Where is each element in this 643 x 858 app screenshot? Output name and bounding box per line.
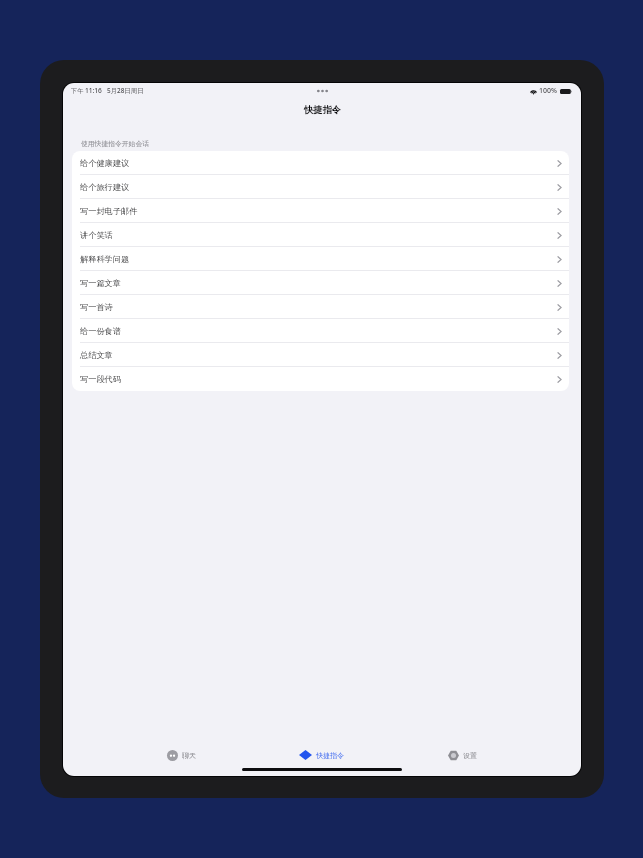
staticText: 写一段代码	[80, 374, 121, 384]
staticText: 解释科学问题	[80, 254, 130, 264]
staticText: 下午	[71, 87, 84, 95]
staticText: 写一篇文章	[80, 278, 121, 288]
staticText: 100%	[539, 86, 557, 96]
button[interactable]: 给个健康建议	[72, 151, 569, 175]
button[interactable]: 写一段代码	[72, 367, 569, 391]
staticText: 使用快捷指令开始会话	[81, 139, 149, 148]
button[interactable]: 给一份食谱	[72, 319, 569, 343]
staticText: 11:16	[85, 86, 102, 95]
button[interactable]: 写一首诗	[72, 295, 569, 319]
staticText: 总结文章	[80, 350, 113, 360]
button[interactable]: 写一封电子邮件	[72, 199, 569, 223]
staticText: 写一首诗	[80, 302, 113, 312]
button[interactable]: 写一篇文章	[72, 271, 569, 295]
button[interactable]: 解释科学问题	[72, 247, 569, 271]
staticText: 讲个笑话	[80, 230, 113, 240]
staticText: 聊天	[182, 751, 196, 760]
button[interactable]: 设置	[392, 750, 533, 761]
staticText: 快捷指令	[304, 104, 341, 116]
button[interactable]: 聊天	[111, 750, 251, 761]
staticText: 写一封电子邮件	[80, 206, 138, 216]
staticText: 给一份食谱	[80, 326, 121, 336]
staticText: 5月28日周日	[107, 86, 144, 95]
staticText: 给个健康建议	[80, 158, 130, 168]
staticText: 设置	[463, 751, 477, 760]
button[interactable]: 快捷指令	[251, 750, 392, 760]
staticText: 给个旅行建议	[80, 182, 130, 192]
button[interactable]: Multitasking	[312, 86, 332, 96]
button[interactable]: 给个旅行建议	[72, 175, 569, 199]
staticText: 快捷指令	[316, 751, 344, 760]
button[interactable]: 讲个笑话	[72, 223, 569, 247]
button[interactable]: 总结文章	[72, 343, 569, 367]
